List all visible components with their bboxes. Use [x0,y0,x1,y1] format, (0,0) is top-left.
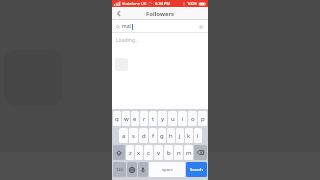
button[interactable]: e [131,111,139,126]
button[interactable]: s [129,128,138,143]
button[interactable]: u [168,111,177,126]
staticText: e [133,115,137,123]
staticText: 123 [116,167,123,172]
staticText: n [177,149,181,157]
staticText: p [201,115,205,123]
staticText: v [157,149,161,157]
staticText: z [129,149,132,157]
button[interactable]: d [139,128,148,143]
staticText: y [161,115,165,123]
button[interactable]: w [122,111,130,126]
staticText: Followers [146,10,174,18]
staticText: Loading... [116,37,140,44]
button[interactable]: Clear [198,24,204,30]
staticText: l [197,132,199,140]
button[interactable]: x [135,145,143,160]
button[interactable]: m [184,145,193,160]
staticText: s [132,132,135,140]
button[interactable]: k [185,128,193,143]
staticText: x [137,149,141,157]
staticText: Vodafone UK [122,1,147,6]
button[interactable]: j [176,128,184,143]
staticText: k [187,132,191,140]
staticText: Search [190,167,203,172]
button[interactable]: y [158,111,167,126]
button[interactable]: g [158,128,166,143]
button[interactable]: i [178,111,187,126]
staticText: u [171,115,175,123]
button[interactable]: Backspace [194,145,207,160]
button[interactable]: c [144,145,153,160]
button[interactable]: p [198,111,207,126]
staticText: c [147,149,150,157]
staticText: o [191,115,195,123]
button[interactable]: z [126,145,134,160]
button[interactable]: v [154,145,163,160]
staticText: a [122,132,126,140]
button[interactable]: Change keyboard [127,162,137,177]
button[interactable]: f [149,128,157,143]
staticText: t [152,115,155,123]
button[interactable]: n [174,145,183,160]
button[interactable] [112,47,208,81]
button[interactable]: a [119,128,128,143]
button[interactable]: space [149,162,185,177]
staticText: i [182,115,184,123]
staticText: q [115,115,119,123]
staticText: space [162,167,173,172]
staticText: 100% [187,1,198,6]
button[interactable]: h [167,128,175,143]
staticText: g [160,132,164,140]
button[interactable]: o [188,111,197,126]
staticText: r [143,115,146,123]
staticText: 8:34 PM [155,1,171,6]
button[interactable]: t [149,111,157,126]
staticText: f [152,132,155,140]
button[interactable]: 123 [113,162,126,177]
staticText: h [169,132,173,140]
button[interactable]: Dictate [138,162,148,177]
staticText: j [179,132,181,140]
button[interactable]: r [140,111,148,126]
button[interactable]: Search [186,162,207,177]
staticText: mal [122,23,131,30]
button[interactable]: l [194,128,202,143]
staticText: w [124,115,129,123]
button[interactable]: Shift [113,145,125,160]
button[interactable]: Back [112,7,126,20]
staticText: b [167,149,171,157]
button[interactable]: b [164,145,173,160]
staticText: d [142,132,146,140]
staticText: m [186,149,192,157]
button[interactable]: q [113,111,121,126]
button[interactable]: mal [112,20,208,33]
